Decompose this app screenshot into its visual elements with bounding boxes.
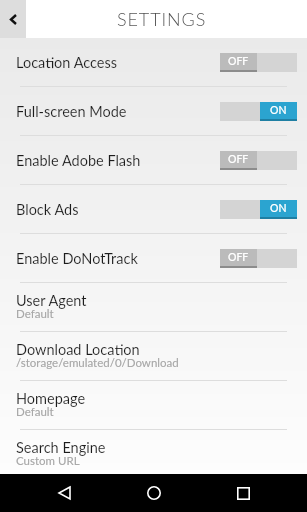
staticText: Full-screen Mode (16, 103, 127, 120)
button[interactable]: Enable Adobe Flash (0, 136, 307, 184)
button[interactable]: On (220, 200, 297, 219)
button[interactable]: Download Location (0, 332, 307, 380)
staticText: Enable DoNotTrack (16, 250, 138, 267)
staticText: OFF (228, 251, 249, 264)
button[interactable]: Location Access (0, 38, 307, 86)
button[interactable]: Full-screen Mode (0, 87, 307, 135)
button[interactable]: Back (0, 0, 26, 38)
staticText: Custom URL (16, 454, 80, 468)
button[interactable]: Enable DoNotTrack (0, 234, 307, 282)
staticText: ON (270, 202, 287, 215)
staticText: Location Access (16, 54, 118, 71)
staticText: Default (16, 405, 54, 419)
button[interactable]: Search Engine (0, 430, 307, 474)
button[interactable]: On (220, 102, 297, 121)
staticText: OFF (228, 55, 249, 68)
staticText: SETTINGS (117, 8, 207, 30)
staticText: Download Location (16, 341, 140, 358)
button[interactable]: User Agent (0, 283, 307, 331)
button[interactable]: Home (109, 474, 199, 512)
staticText: Homepage (16, 390, 86, 407)
button[interactable]: Off (220, 151, 297, 170)
button[interactable]: Off (220, 249, 297, 268)
staticText: Search Engine (16, 439, 106, 456)
staticText: ON (270, 104, 287, 117)
button[interactable]: Homepage (0, 381, 307, 429)
staticText: Block Ads (16, 201, 79, 218)
button[interactable]: Recents (198, 474, 288, 512)
button[interactable]: Block Ads (0, 185, 307, 233)
staticText: User Agent (16, 292, 87, 309)
staticText: OFF (228, 153, 249, 166)
button[interactable]: Back (19, 474, 109, 512)
button[interactable]: Off (220, 53, 297, 72)
staticText: Enable Adobe Flash (16, 152, 141, 169)
staticText: /storage/emulated/0/Download (16, 356, 179, 370)
staticText: Default (16, 307, 54, 321)
